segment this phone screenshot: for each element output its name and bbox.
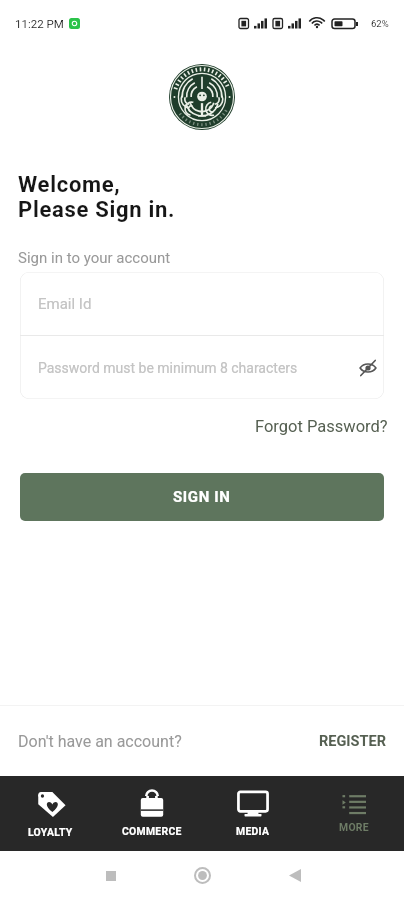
staticText: Password must be minimum 8 characters xyxy=(38,360,298,376)
staticText: LOYALTY xyxy=(28,826,73,838)
button[interactable]: REGISTER xyxy=(315,729,390,754)
staticText: Sign in to your account xyxy=(18,249,171,267)
staticText: COMMERCE xyxy=(122,825,182,837)
button[interactable]: Home xyxy=(184,857,221,894)
button[interactable]: Forgot Password? xyxy=(251,412,392,441)
staticText: Forgot Password? xyxy=(255,417,388,436)
button[interactable]: COMMERCE xyxy=(101,776,202,851)
staticText: Email Id xyxy=(38,295,92,313)
staticText: REGISTER xyxy=(319,733,386,750)
staticText: 62% xyxy=(371,18,389,29)
button[interactable]: LOYALTY xyxy=(0,776,101,851)
button[interactable]: MORE xyxy=(303,776,404,851)
staticText: MEDIA xyxy=(236,825,270,837)
button[interactable]: Recents xyxy=(92,857,129,894)
staticText: MORE xyxy=(339,821,369,833)
staticText: Welcome, Please Sign in. xyxy=(18,172,176,223)
button[interactable]: Email Id xyxy=(20,272,384,335)
button[interactable]: Back xyxy=(276,857,313,894)
staticText: SIGN IN xyxy=(173,488,231,506)
staticText: Don't have an account? xyxy=(18,732,182,751)
staticText: 11:22 PM xyxy=(15,17,64,30)
button[interactable]: SIGN IN xyxy=(20,473,384,521)
button[interactable]: Show password xyxy=(355,355,381,381)
button[interactable]: MEDIA xyxy=(202,776,303,851)
button[interactable]: Password must be minimum 8 characters xyxy=(20,336,384,399)
